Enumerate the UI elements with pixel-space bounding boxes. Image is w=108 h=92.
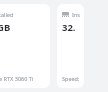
staticText: Installed bbox=[72, 11, 80, 18]
button[interactable]: Memory bbox=[57, 4, 84, 88]
staticText: Installed bbox=[0, 11, 14, 18]
staticText: GeForce RTX 3060 Ti bbox=[0, 75, 34, 82]
button[interactable]: Graphics card bbox=[0, 4, 50, 88]
staticText: 32.0 GB bbox=[62, 21, 80, 34]
staticText: 8.0 GB bbox=[0, 21, 11, 34]
other: Memory bbox=[62, 12, 69, 17]
staticText: Speed: 2666 MHz bbox=[62, 75, 80, 82]
